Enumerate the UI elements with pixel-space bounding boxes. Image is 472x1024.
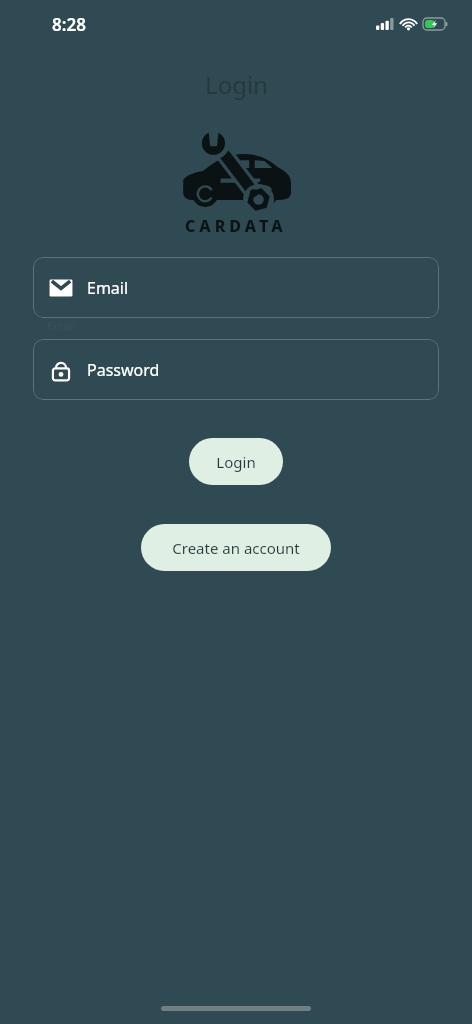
button[interactable]: Create an account	[141, 524, 331, 571]
staticText: Login	[216, 452, 256, 472]
staticText: Password	[87, 359, 160, 381]
other: CarData logo	[181, 133, 291, 209]
staticText: Create an account	[172, 538, 300, 558]
button[interactable]: Email	[33, 257, 439, 318]
staticText: CARDATA	[185, 215, 287, 237]
staticText: Email	[87, 277, 129, 299]
button[interactable]: Password	[33, 339, 439, 400]
staticText: Login	[205, 68, 268, 101]
button[interactable]: Login	[189, 438, 283, 485]
staticText: 8:28	[52, 13, 86, 36]
